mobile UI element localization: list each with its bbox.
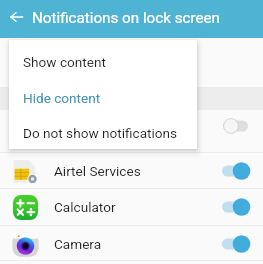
button[interactable]: Back <box>0 0 32 36</box>
staticText: Show content <box>23 54 106 70</box>
button[interactable]: Do not show notifications <box>9 116 197 149</box>
button[interactable]: Camera <box>0 226 263 261</box>
button[interactable]: Hide content <box>9 80 197 116</box>
button[interactable]: Show content <box>9 44 197 80</box>
staticText: Notifications on lock screen <box>32 9 220 27</box>
staticText: Hide content <box>23 90 101 106</box>
button[interactable]: Airtel Services <box>0 153 263 188</box>
staticText: Calculator <box>54 199 222 215</box>
button[interactable] <box>0 110 263 152</box>
staticText: Airtel Services <box>54 163 222 179</box>
staticText: Camera <box>54 236 222 252</box>
button[interactable]: Calculator <box>0 189 263 224</box>
staticText: Do not show notifications <box>23 125 178 141</box>
